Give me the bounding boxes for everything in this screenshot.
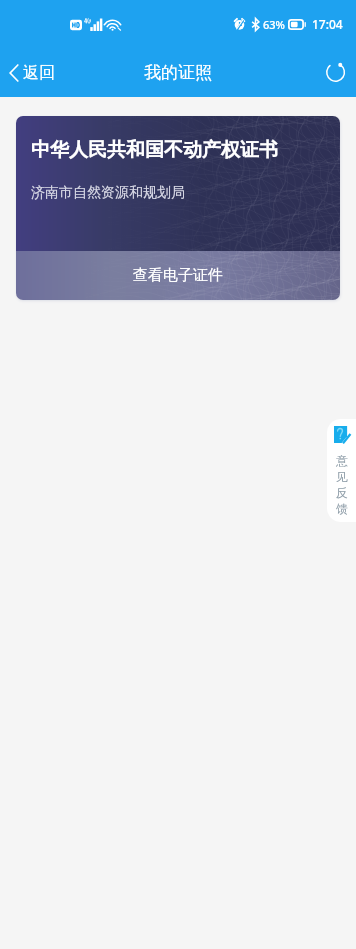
- staticText: 返回: [23, 63, 55, 83]
- staticText: 我的证照: [144, 62, 212, 83]
- staticText: 17:04: [312, 16, 343, 32]
- staticText: 查看电子证件: [133, 266, 223, 285]
- staticText: 中华人民共和国不动产权证书: [31, 138, 278, 162]
- button[interactable]: Refresh: [315, 48, 356, 97]
- button[interactable]: 意见反馈: [327, 419, 356, 522]
- button[interactable]: 返回: [0, 48, 67, 97]
- button[interactable]: 中华人民共和国不动产权证书: [16, 116, 340, 300]
- staticText: 济南市自然资源和规划局: [31, 184, 185, 202]
- staticText: 63%: [263, 17, 285, 32]
- staticText: 意 见 反 馈: [336, 453, 348, 517]
